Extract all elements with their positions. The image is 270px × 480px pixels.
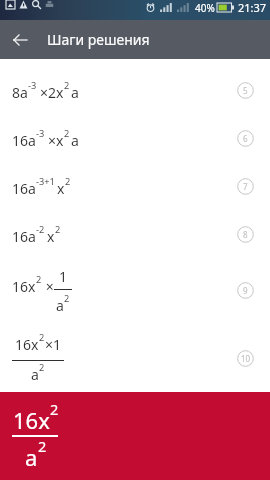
staticText: 2 (64, 127, 70, 140)
staticText: × (42, 277, 54, 296)
staticText: 10 (241, 353, 251, 364)
button[interactable]: 16a (0, 114, 270, 162)
button[interactable]: 16a (0, 162, 270, 210)
staticText: 2 (39, 361, 45, 374)
staticText: x (57, 179, 65, 198)
staticText: 16a (12, 131, 36, 150)
staticText: 16x (15, 335, 39, 354)
staticText: 16a (12, 227, 36, 246)
staticText: -3 (36, 127, 45, 140)
staticText: a (31, 365, 39, 384)
staticText: -2 (36, 223, 45, 236)
staticText: 8a (12, 83, 28, 102)
staticText: a (25, 442, 38, 472)
button[interactable]: Back (0, 20, 40, 59)
staticText: -3+1 (36, 175, 55, 188)
staticText: a (56, 296, 64, 315)
button[interactable]: 16a (0, 210, 270, 258)
staticText: 6 (243, 133, 248, 144)
staticText: 2 (50, 399, 59, 419)
staticText: 2 (39, 331, 45, 344)
staticText: x (47, 227, 55, 246)
staticText: a (71, 83, 79, 102)
staticText: 16x (12, 277, 36, 296)
staticText: 40% (195, 1, 215, 15)
staticText: 8 (243, 229, 248, 240)
staticText: 2 (65, 175, 71, 188)
staticText: 2 (38, 436, 47, 456)
button[interactable]: 16x (0, 258, 270, 323)
staticText: 2 (55, 223, 61, 236)
staticText: 2 (64, 292, 70, 305)
staticText: 16a (12, 179, 36, 198)
staticText: 21:37 (238, 0, 267, 15)
staticText: a (71, 131, 79, 150)
staticText: 5 (243, 85, 248, 96)
staticText: Шаги решения (47, 30, 150, 49)
staticText: ×x (48, 131, 64, 150)
staticText: -3 (28, 79, 37, 92)
staticText: 1 (59, 267, 68, 286)
staticText: 9 (243, 285, 248, 296)
button[interactable]: 8a (0, 66, 270, 114)
staticText: 2 (64, 79, 70, 92)
staticText: 7 (243, 181, 248, 192)
staticText: 2 (36, 273, 42, 286)
staticText: ×2x (40, 83, 64, 102)
staticText: ×1 (45, 335, 62, 354)
button[interactable]: 16x (0, 323, 270, 394)
staticText: 16x (13, 405, 50, 435)
